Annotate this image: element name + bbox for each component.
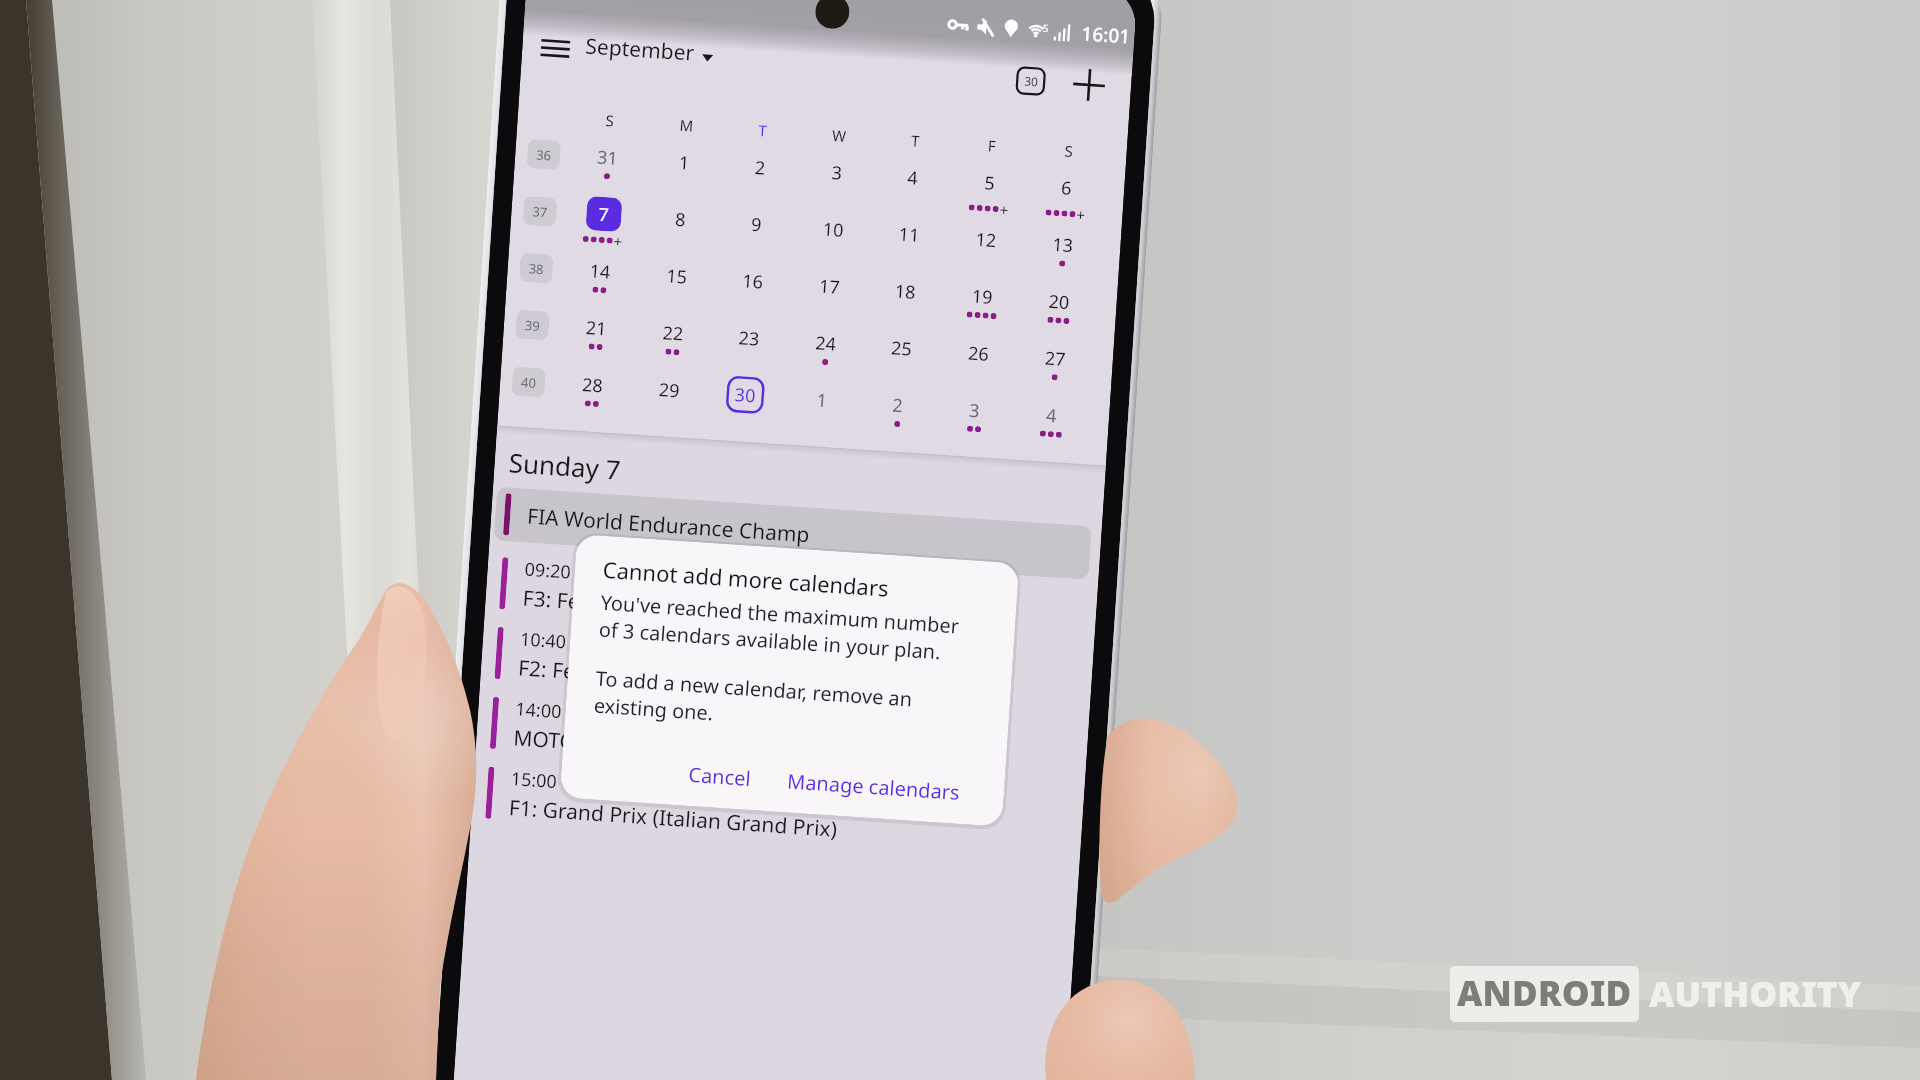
button[interactable]: 3 [806, 154, 866, 213]
staticText: 31 [596, 144, 619, 171]
staticText: 40 [521, 373, 537, 392]
button[interactable]: 4 [1021, 396, 1080, 456]
staticText: 3 [968, 398, 981, 423]
staticText: 38 [528, 259, 544, 278]
staticText: 3 [831, 160, 843, 186]
button[interactable]: 09:20 [490, 549, 1085, 655]
staticText: 30 [1024, 73, 1039, 89]
staticText: 20 [1048, 289, 1070, 315]
button[interactable]: FIA World Endurance Champ [494, 487, 1092, 580]
button[interactable]: Menu [536, 29, 574, 68]
staticText: + [613, 231, 623, 251]
staticText: 29 [658, 377, 681, 403]
button[interactable]: 1 [791, 381, 851, 441]
staticText: 14 [589, 258, 611, 284]
button[interactable]: 1 [654, 143, 713, 203]
button[interactable]: 22 [642, 314, 702, 374]
button[interactable]: Jump to today [1010, 61, 1050, 101]
button[interactable]: 9 [726, 205, 785, 265]
staticText: 25 [890, 335, 913, 362]
button[interactable]: Add event [1070, 66, 1108, 104]
staticText: 36 [536, 145, 552, 164]
staticText: W [831, 125, 847, 146]
button[interactable]: 7 [573, 195, 632, 255]
staticText: of 3 calendars available in your plan. [598, 616, 942, 665]
staticText: 12 [975, 227, 997, 253]
button[interactable]: 8 [650, 200, 709, 260]
staticText: 26 [967, 340, 990, 367]
staticText: FIA World Endurance Champ [526, 502, 811, 549]
button[interactable]: 25 [871, 329, 930, 389]
staticText: 18 [894, 278, 917, 305]
button[interactable]: 10:40 [485, 619, 1080, 724]
staticText: 39 [524, 316, 540, 335]
staticText: 5 [984, 170, 996, 196]
staticText: 27 [1044, 346, 1067, 372]
staticText: existing one. [593, 691, 714, 726]
button[interactable]: 28 [562, 366, 621, 425]
staticText: 1 [678, 150, 691, 176]
staticText: F2: Feature Race [517, 653, 681, 693]
staticText: 5 [1042, 21, 1049, 35]
staticText: 19 [971, 284, 994, 310]
staticText: Cannot add more calendars [602, 554, 890, 603]
button[interactable]: 17 [799, 267, 858, 327]
staticText: 15:00 - 17:00 [510, 766, 619, 798]
staticText: 21 [585, 315, 608, 341]
button[interactable]: 23 [718, 319, 778, 379]
staticText: T [910, 130, 921, 151]
button[interactable]: 5 [959, 164, 1018, 223]
staticText: 8 [674, 207, 687, 232]
staticText: 1 [816, 388, 828, 413]
staticText: 4 [1045, 403, 1058, 428]
button[interactable]: 3 [944, 391, 1003, 451]
staticText: ANDROID [1457, 969, 1632, 1017]
button[interactable]: 6 [1036, 169, 1095, 228]
button[interactable]: 10 [802, 210, 862, 270]
staticText: September [585, 31, 695, 68]
button[interactable]: 12 [955, 221, 1015, 280]
button[interactable]: 21 [565, 309, 625, 368]
button[interactable]: 26 [947, 334, 1007, 394]
staticText: 37 [532, 202, 548, 221]
staticText: 22 [662, 320, 684, 346]
staticText: 11 [898, 222, 921, 248]
button[interactable]: 30 [714, 376, 774, 436]
staticText: T [758, 120, 768, 141]
button[interactable]: 31 [577, 138, 636, 198]
staticText: + [1076, 204, 1086, 225]
button[interactable]: Cancel [677, 752, 763, 801]
staticText: To add a new calendar, remove an [595, 664, 914, 712]
button[interactable]: 15:00 - 17:00 [476, 759, 1071, 864]
staticText: AUTHORITY [1649, 970, 1862, 1018]
button[interactable]: 2 [729, 148, 789, 208]
staticText: 23 [738, 325, 760, 352]
staticText: Manage calendars [786, 767, 961, 806]
button[interactable]: 19 [951, 277, 1011, 337]
button[interactable]: 11 [878, 215, 938, 275]
button[interactable]: 24 [795, 324, 854, 384]
button[interactable]: 4 [882, 159, 942, 218]
staticText: 15 [666, 263, 688, 290]
button[interactable]: 13 [1032, 226, 1091, 285]
staticText: S [1064, 140, 1074, 161]
button[interactable]: 16 [722, 262, 781, 322]
staticText: Sunday 7 [508, 444, 622, 487]
staticText: 9 [750, 212, 763, 237]
button[interactable]: 2 [867, 386, 926, 446]
staticText: Cancel [688, 761, 752, 792]
button[interactable]: 15 [646, 257, 706, 317]
button[interactable]: 27 [1024, 339, 1084, 399]
button[interactable]: 18 [874, 272, 934, 332]
staticText: 28 [581, 372, 604, 398]
button[interactable]: 14 [569, 252, 629, 312]
staticText: You've reached the maximum number [600, 589, 960, 639]
button[interactable]: 14:00 [480, 689, 1075, 794]
staticText: 24 [815, 330, 837, 357]
staticText: 09:20 [524, 557, 572, 585]
staticText: S [605, 110, 615, 131]
button[interactable]: 20 [1028, 283, 1088, 342]
button[interactable]: Manage calendars [776, 759, 971, 814]
button[interactable]: 29 [638, 371, 698, 430]
button[interactable]: September [585, 31, 714, 69]
